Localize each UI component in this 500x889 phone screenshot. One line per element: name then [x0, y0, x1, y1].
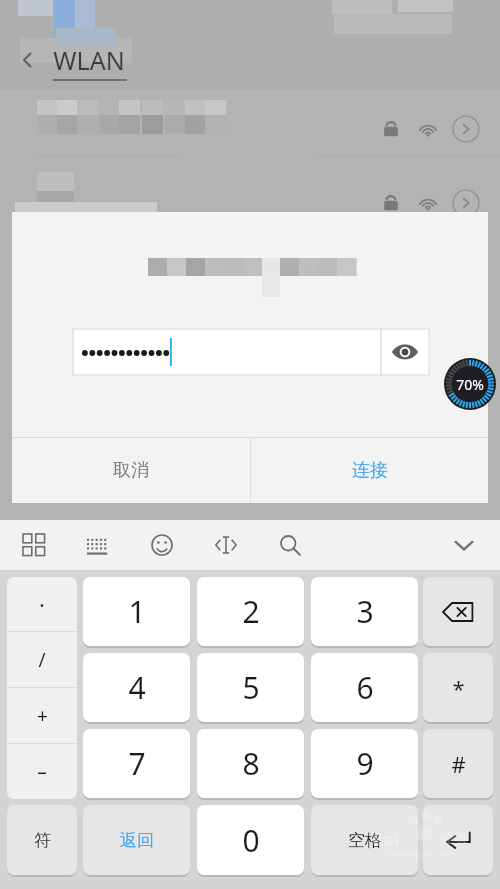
- button[interactable]: 返回: [83, 805, 190, 875]
- staticText: WLAN: [53, 43, 125, 77]
- button[interactable]: 7: [83, 729, 190, 798]
- button[interactable]: /: [7, 632, 77, 687]
- staticText: 连接: [352, 459, 388, 482]
- staticText: 8: [242, 743, 260, 784]
- staticText: +: [37, 703, 48, 729]
- button[interactable]: #: [423, 729, 493, 798]
- staticText: 取消: [113, 459, 149, 482]
- staticText: 3: [356, 591, 374, 632]
- button[interactable]: 连接: [251, 438, 488, 503]
- button[interactable]: 取消: [12, 438, 250, 503]
- button[interactable]: Keyboard layouts: [16, 527, 52, 563]
- button[interactable]: 6: [311, 653, 418, 722]
- staticText: jingyan.baidu.com: [386, 848, 456, 859]
- button[interactable]: Enter: [423, 805, 493, 875]
- button[interactable]: 9: [311, 729, 418, 798]
- button[interactable]: +: [7, 688, 77, 743]
- staticText: –: [37, 759, 47, 785]
- staticText: 1: [128, 591, 146, 632]
- button[interactable]: 3: [311, 577, 418, 646]
- staticText: 2: [242, 591, 260, 632]
- button[interactable]: [0, 92, 500, 166]
- button[interactable]: 0: [197, 805, 304, 875]
- button[interactable]: Search: [272, 527, 308, 563]
- staticText: 空格: [348, 830, 382, 851]
- button[interactable]: –: [7, 744, 77, 799]
- button[interactable]: Backspace: [423, 577, 493, 646]
- staticText: 70%: [456, 375, 484, 394]
- button[interactable]: 2: [197, 577, 304, 646]
- button[interactable]: 5: [197, 653, 304, 722]
- button[interactable]: 4: [83, 653, 190, 722]
- button[interactable]: 1: [83, 577, 190, 646]
- button[interactable]: *: [423, 653, 493, 722]
- button[interactable]: Show password: [381, 329, 429, 375]
- staticText: 6: [356, 667, 374, 708]
- staticText: #: [451, 749, 466, 779]
- button[interactable]: 符: [7, 805, 77, 875]
- staticText: 7: [128, 743, 146, 784]
- button[interactable]: 8: [197, 729, 304, 798]
- button[interactable]: 空格: [311, 805, 418, 875]
- button[interactable]: ·: [7, 577, 77, 631]
- button[interactable]: Keyboard: [80, 527, 116, 563]
- button[interactable]: Back: [10, 42, 46, 78]
- staticText: 5: [242, 667, 260, 708]
- button[interactable]: Move cursor: [208, 527, 244, 563]
- button[interactable]: Hide keyboard: [442, 523, 486, 567]
- staticText: 9: [356, 743, 374, 784]
- staticText: 4: [128, 667, 146, 708]
- staticText: *: [452, 673, 465, 703]
- button[interactable]: [73, 329, 381, 375]
- button[interactable]: [0, 166, 500, 240]
- staticText: ·: [39, 589, 45, 619]
- staticText: 符: [34, 830, 51, 851]
- staticText: Bai: [372, 828, 399, 851]
- staticText: 返回: [120, 830, 154, 851]
- staticText: /: [38, 647, 46, 673]
- button[interactable]: Emoji: [144, 527, 180, 563]
- staticText: 经验: [440, 830, 468, 848]
- staticText: 0: [242, 820, 260, 861]
